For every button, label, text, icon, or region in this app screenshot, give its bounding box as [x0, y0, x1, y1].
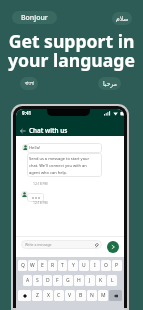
- staticText: E: [41, 262, 44, 269]
- staticText: B: [79, 292, 83, 299]
- button[interactable]: U: [79, 260, 89, 271]
- button[interactable]: H: [74, 275, 84, 286]
- staticText: M: [101, 292, 106, 299]
- staticText: U: [82, 262, 86, 269]
- staticText: W: [30, 262, 35, 269]
- staticText: S: [36, 277, 39, 284]
- button[interactable]: J: [85, 275, 95, 286]
- button[interactable]: N: [87, 290, 97, 301]
- button[interactable]: T: [58, 260, 67, 271]
- button[interactable]: K: [96, 275, 106, 286]
- button[interactable]: Send: [107, 241, 119, 253]
- button[interactable]: S: [33, 275, 42, 286]
- button[interactable]: Bonjour: [12, 11, 57, 24]
- staticText: G: [66, 277, 70, 284]
- staticText: C: [57, 292, 61, 299]
- staticText: سلام: [116, 15, 129, 22]
- staticText: K: [99, 277, 103, 284]
- button[interactable]: W: [28, 260, 37, 271]
- staticText: Z: [36, 292, 39, 299]
- staticText: Chat with us: [29, 126, 68, 135]
- staticText: 12:18 PM: [33, 181, 48, 186]
- staticText: H: [77, 277, 81, 284]
- button[interactable]: R: [48, 260, 57, 271]
- button[interactable]: مرحبا: [98, 77, 121, 90]
- staticText: Bonjour: [21, 13, 48, 23]
- staticText: N: [90, 292, 94, 299]
- staticText: L: [111, 277, 114, 284]
- staticText: Q: [21, 262, 25, 269]
- button[interactable]: L: [107, 275, 117, 286]
- button[interactable]: Z: [32, 290, 42, 301]
- button[interactable]: D: [43, 275, 52, 286]
- staticText: Write a message: [25, 242, 52, 247]
- button[interactable]: F: [53, 275, 62, 286]
- staticText: I: [94, 262, 96, 269]
- button[interactable]: Y: [68, 260, 78, 271]
- button[interactable]: Write a message: [21, 240, 102, 249]
- button[interactable]: X: [43, 290, 53, 301]
- staticText: R: [51, 262, 55, 269]
- button[interactable]: C: [54, 290, 64, 301]
- button[interactable]: G: [63, 275, 73, 286]
- staticText: P: [115, 262, 119, 269]
- staticText: Send us a message to start your chat. We…: [29, 156, 90, 175]
- staticText: 12:18 PM: [33, 200, 48, 205]
- button[interactable]: M: [98, 290, 108, 301]
- staticText: F: [56, 277, 59, 284]
- staticText: D: [46, 277, 50, 284]
- staticText: T: [61, 262, 64, 269]
- other: Back: [20, 128, 26, 134]
- staticText: Get support in your language: [0, 29, 143, 72]
- staticText: V: [68, 292, 72, 299]
- button[interactable]: E: [38, 260, 47, 271]
- staticText: A: [26, 277, 30, 284]
- button[interactable]: Q: [18, 260, 27, 271]
- staticText: X: [47, 292, 50, 299]
- staticText: বাংলা: [25, 81, 34, 87]
- staticText: O: [104, 262, 108, 269]
- staticText: 9:41: [22, 110, 32, 116]
- button[interactable]: বাংলা: [20, 77, 38, 90]
- button[interactable]: I: [90, 260, 100, 271]
- button[interactable]: P: [112, 260, 122, 271]
- button[interactable]: Backspace: [109, 290, 122, 301]
- button[interactable]: B: [76, 290, 86, 301]
- staticText: Y: [72, 262, 75, 269]
- staticText: مرحبا: [103, 80, 117, 87]
- staticText: Hello!: [29, 145, 41, 151]
- button[interactable]: V: [65, 290, 75, 301]
- other: Attach file: [94, 243, 100, 249]
- button[interactable]: سلام: [112, 12, 132, 25]
- button[interactable]: A: [23, 275, 32, 286]
- button[interactable]: Shift: [18, 290, 31, 301]
- button[interactable]: O: [101, 260, 111, 271]
- staticText: J: [89, 277, 91, 284]
